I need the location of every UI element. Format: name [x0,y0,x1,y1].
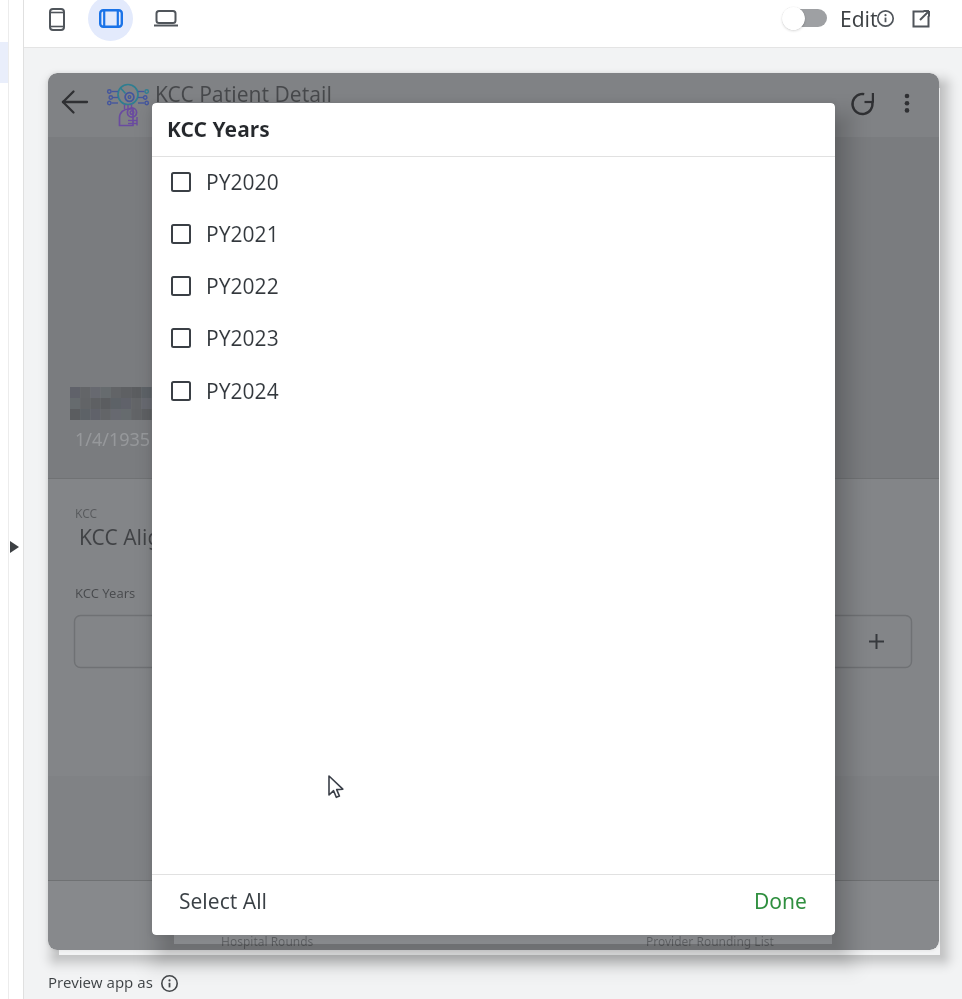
staticText: Hospital Rounds [221,933,314,949]
staticText: PY2023 [206,324,279,353]
button[interactable]: PY2022 [160,260,827,312]
staticText: KCC Alignment [79,523,226,552]
staticText: PY2020 [206,168,279,197]
button[interactable] [150,4,182,32]
button[interactable] [895,88,919,118]
button[interactable]: PY2024 [160,365,827,417]
staticText: PY2024 [206,377,279,406]
button[interactable]: Done [740,881,820,921]
staticText: Provider Rounding List [646,933,774,949]
staticText: KCC Years [167,115,270,144]
staticText: Select All [179,887,268,916]
button[interactable] [910,8,932,30]
staticText: PY2022 [206,272,279,301]
staticText: KCC Years [75,584,136,602]
button[interactable] [876,9,894,27]
staticText: KCC [75,505,98,521]
button[interactable]: Select All [168,881,288,921]
staticText: Edit [840,5,878,34]
button[interactable] [160,974,178,992]
staticText: PY2021 [206,220,279,249]
button[interactable] [848,89,878,119]
button[interactable] [9,540,21,554]
staticText: Done [754,887,807,916]
staticText: KCC Patient Detail [155,80,332,109]
staticText: 1/4/1935 [75,427,151,452]
button[interactable] [782,7,828,30]
button[interactable]: PY2023 [160,312,827,364]
button[interactable] [43,3,71,35]
button[interactable]: PY2020 [160,156,827,208]
button[interactable]: PY2021 [160,208,827,260]
staticText: Preview app as [48,972,153,992]
button[interactable] [58,86,92,118]
button[interactable] [74,615,912,668]
button[interactable] [88,0,133,41]
